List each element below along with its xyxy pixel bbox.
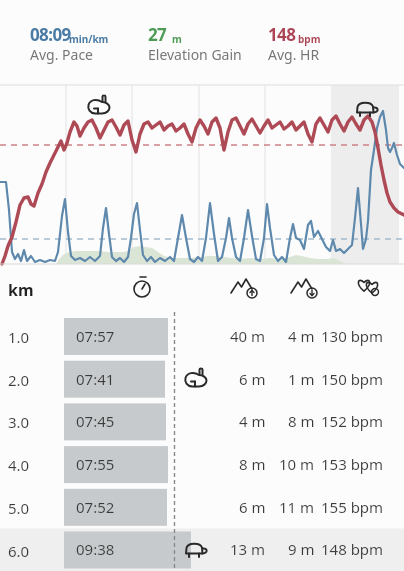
staticText: 10 m — [279, 454, 315, 474]
staticText: 6 m — [239, 369, 266, 389]
staticText: 40 m — [230, 326, 266, 346]
staticText: Elevation Gain — [148, 45, 242, 64]
staticText: 5.0 — [8, 498, 30, 518]
staticText: 13 m — [230, 539, 266, 559]
staticText: 8 m — [239, 454, 266, 474]
staticText: 148 bpm — [321, 539, 384, 559]
staticText: 6.0 — [8, 541, 30, 561]
staticText: 152 bpm — [321, 411, 384, 431]
staticText: 4 m — [239, 411, 266, 431]
staticText: 6 m — [239, 497, 266, 517]
staticText: 148 — [268, 23, 296, 46]
staticText: m — [172, 32, 182, 46]
staticText: 153 bpm — [321, 454, 384, 474]
button[interactable]: 5.0 — [0, 486, 404, 529]
staticText: 1 m — [288, 369, 315, 389]
staticText: 8 m — [288, 411, 315, 431]
button[interactable]: 6.0 — [0, 529, 404, 571]
staticText: bpm — [298, 32, 321, 46]
staticText: 07:55 — [76, 454, 115, 474]
staticText: 150 bpm — [321, 369, 384, 389]
staticText: 07:45 — [76, 411, 115, 431]
staticText: 3.0 — [8, 412, 30, 432]
staticText: Avg. Pace — [30, 45, 93, 64]
staticText: 4 m — [288, 326, 315, 346]
staticText: 130 bpm — [321, 326, 384, 346]
staticText: 2.0 — [8, 370, 30, 390]
button[interactable]: 1.0 — [0, 315, 404, 358]
staticText: 07:52 — [76, 497, 115, 517]
staticText: 1.0 — [8, 327, 30, 347]
staticText: 155 bpm — [321, 497, 384, 517]
staticText: 08:09 — [30, 23, 71, 46]
staticText: 11 m — [279, 497, 315, 517]
staticText: 07:57 — [76, 326, 115, 346]
staticText: 4.0 — [8, 455, 30, 475]
staticText: 9 m — [288, 539, 315, 559]
staticText: 09:38 — [76, 539, 115, 559]
staticText: Avg. HR — [268, 45, 320, 64]
button[interactable]: 2.0 — [0, 358, 404, 401]
button[interactable]: 4.0 — [0, 443, 404, 486]
staticText: 07:41 — [76, 369, 115, 389]
staticText: km — [8, 279, 34, 301]
staticText: 27 — [148, 23, 167, 46]
button[interactable]: 3.0 — [0, 400, 404, 443]
staticText: min/km — [69, 32, 109, 46]
